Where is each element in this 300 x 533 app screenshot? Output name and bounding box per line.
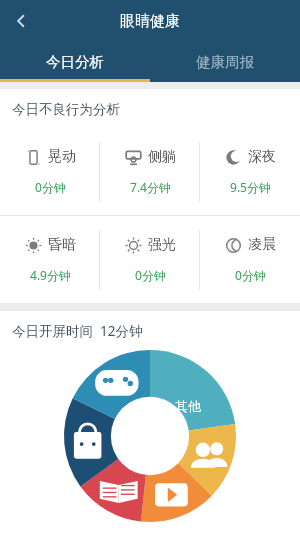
staticText: 12分钟 (100, 322, 143, 340)
staticText: 今日开屏时间 (12, 323, 93, 340)
staticText: 今日不良行为分析 (12, 101, 120, 118)
button[interactable]: 凌晨 (200, 216, 300, 303)
staticText: 9.5分钟 (230, 179, 271, 195)
button[interactable]: 晃动 (0, 128, 100, 215)
staticText: 昏暗 (48, 236, 76, 254)
button[interactable]: 强光 (100, 216, 200, 303)
staticText: 深夜 (248, 148, 276, 166)
button[interactable]: 健康周报 (150, 42, 300, 82)
staticText: 其他 (175, 398, 201, 414)
button[interactable]: 侧躺 (100, 128, 200, 215)
button[interactable]: 今日分析 (0, 42, 150, 82)
button[interactable]: 昏暗 (0, 216, 100, 303)
staticText: 强光 (148, 236, 176, 254)
staticText: 7.4分钟 (130, 179, 171, 195)
staticText: 健康周报 (196, 53, 254, 71)
staticText: 眼睛健康 (120, 12, 180, 31)
staticText: 凌晨 (248, 236, 276, 254)
button[interactable]: 深夜 (200, 128, 300, 215)
button[interactable]: Back (0, 0, 42, 42)
staticText: 侧躺 (148, 148, 176, 166)
staticText: 0分钟 (35, 179, 66, 195)
staticText: 0分钟 (235, 267, 266, 283)
staticText: 今日分析 (46, 53, 104, 71)
staticText: 4.9分钟 (30, 267, 71, 283)
staticText: 晃动 (48, 148, 76, 166)
staticText: 0分钟 (135, 267, 166, 283)
